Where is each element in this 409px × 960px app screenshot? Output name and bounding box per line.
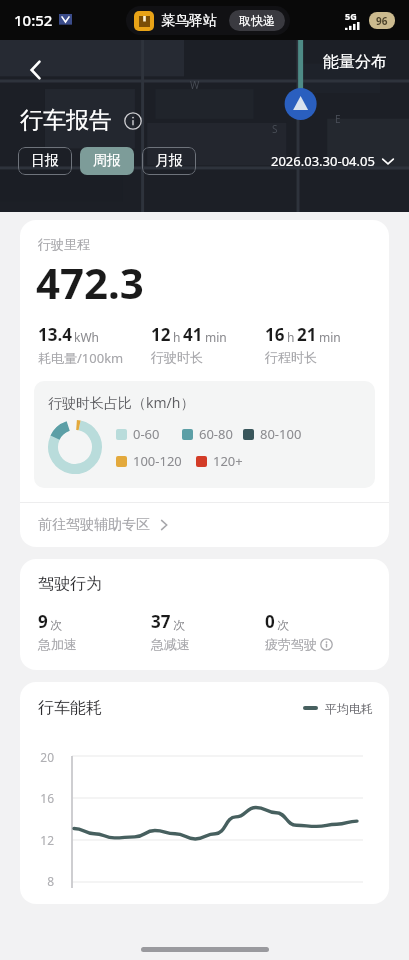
staticText: E: [335, 112, 341, 126]
staticText: 前往驾驶辅助专区: [38, 516, 150, 534]
staticText: 8: [32, 873, 54, 889]
button[interactable]: 月报: [142, 147, 196, 175]
staticText: min: [319, 329, 341, 345]
staticText: kWh: [74, 329, 99, 345]
staticText: 41: [183, 323, 203, 346]
staticText: 行车能耗: [38, 698, 102, 718]
staticText: 日报: [31, 152, 59, 170]
staticText: 月报: [155, 152, 183, 170]
staticText: 12: [32, 832, 54, 848]
staticText: 行程时长: [265, 349, 317, 365]
staticText: W: [190, 78, 200, 92]
staticText: 驾驶行为: [38, 574, 102, 594]
staticText: 16: [265, 323, 285, 346]
staticText: 菜鸟驿站: [161, 12, 217, 30]
staticText: 行车报告: [20, 106, 112, 135]
staticText: 急加速: [38, 636, 77, 652]
staticText: 21: [297, 323, 317, 346]
staticText: 能量分布: [323, 52, 387, 72]
button[interactable]: 菜鸟驿站: [126, 6, 290, 35]
staticText: 100-120: [133, 452, 182, 470]
button[interactable]: Back: [14, 48, 58, 92]
staticText: 耗电量/100km: [38, 349, 124, 367]
staticText: 9: [38, 610, 48, 633]
staticText: min: [205, 329, 227, 345]
staticText: 13.4: [38, 323, 72, 346]
button[interactable]: 取快递: [229, 10, 285, 31]
button[interactable]: 2026.03.30-04.05: [271, 152, 395, 170]
button[interactable]: 日报: [18, 147, 72, 175]
button[interactable]: 前往驾驶辅助专区: [20, 503, 389, 547]
staticText: 2026.03.30-04.05: [271, 152, 375, 170]
staticText: 取快递: [239, 13, 275, 28]
staticText: 16: [32, 790, 54, 806]
staticText: 12: [151, 323, 171, 346]
staticText: 0-60: [133, 425, 160, 443]
button[interactable]: Info: [120, 108, 146, 134]
staticText: 行驶时长: [151, 349, 203, 365]
staticText: 次: [173, 617, 185, 632]
staticText: 37: [151, 610, 171, 633]
staticText: 平均电耗: [325, 701, 373, 716]
staticText: 疲劳驾驶: [265, 636, 317, 652]
staticText: 0: [265, 610, 275, 633]
staticText: 96: [376, 14, 388, 28]
staticText: 次: [50, 617, 62, 632]
staticText: 次: [277, 617, 289, 632]
staticText: 120+: [213, 452, 243, 470]
staticText: 周报: [93, 152, 121, 170]
staticText: 行驶里程: [38, 236, 90, 252]
button[interactable]: 周报: [80, 147, 134, 175]
staticText: S: [272, 122, 278, 136]
staticText: 60-80: [199, 425, 233, 443]
staticText: 80-100: [260, 425, 302, 443]
staticText: 10:52: [14, 10, 53, 30]
staticText: h: [287, 329, 295, 345]
staticText: 行驶时长占比（km/h）: [48, 393, 195, 412]
staticText: h: [173, 329, 181, 345]
staticText: 急减速: [151, 636, 190, 652]
staticText: 472.3: [36, 254, 144, 311]
staticText: 20: [32, 749, 54, 765]
staticText: 5G: [345, 10, 357, 22]
